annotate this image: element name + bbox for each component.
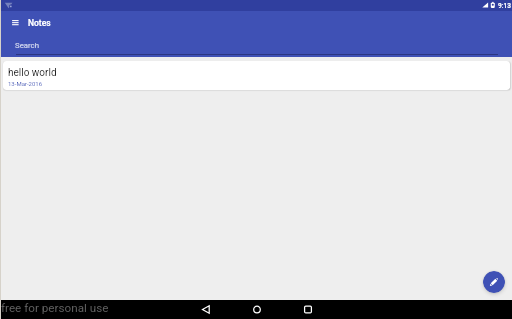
staticText: Notes xyxy=(28,18,51,28)
staticText: free for personal use xyxy=(1,301,109,315)
button[interactable]: hello world xyxy=(3,61,510,90)
button[interactable]: Back xyxy=(189,300,223,319)
button[interactable]: Menu xyxy=(7,14,24,31)
staticText: 9:13 xyxy=(498,2,511,10)
staticText: hello world xyxy=(8,67,57,79)
button[interactable]: Recent apps xyxy=(291,300,325,319)
button[interactable]: New note xyxy=(483,271,505,293)
button[interactable]: Home xyxy=(240,300,274,319)
staticText: Search xyxy=(15,41,39,50)
staticText: 13-Mar-2016 xyxy=(8,80,43,87)
